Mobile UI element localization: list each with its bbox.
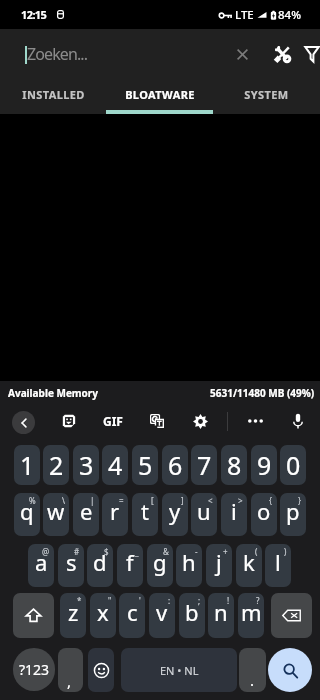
button[interactable]: % (14, 493, 40, 536)
button[interactable]: + (206, 544, 232, 587)
button[interactable]: ?123 (13, 648, 55, 691)
staticText: 12:15 (21, 7, 47, 22)
button[interactable]: ? (238, 593, 264, 638)
button[interactable]: { (251, 493, 277, 536)
staticText: " (108, 595, 112, 606)
button[interactable]: : (149, 593, 175, 638)
staticText: 5 (138, 448, 153, 482)
button[interactable]: 5 (132, 445, 158, 485)
staticText: @ (42, 546, 50, 557)
button[interactable]: ; (179, 593, 205, 638)
button[interactable]: 3 (73, 445, 99, 485)
button[interactable]: _ (117, 544, 143, 587)
button[interactable]: Emoji (88, 648, 114, 692)
button[interactable]: Stickers (56, 408, 82, 434)
button[interactable]: ' (119, 593, 145, 638)
button[interactable]: SYSTEM (213, 80, 320, 114)
staticText: 3 (79, 448, 94, 482)
button[interactable]: INSTALLED (0, 80, 106, 114)
staticText: } (298, 495, 302, 506)
staticText: > (238, 495, 243, 506)
staticText: 9 (257, 448, 272, 482)
button[interactable]: Clear search (222, 34, 262, 74)
button[interactable]: | (73, 493, 99, 536)
staticText: q (20, 496, 34, 526)
button[interactable]: 6 (162, 445, 188, 485)
staticText: # (74, 546, 80, 557)
staticText: ) (284, 546, 287, 557)
button[interactable]: BLOATWARE (106, 80, 213, 114)
staticText: { (269, 495, 273, 506)
staticText: j (216, 547, 222, 577)
staticText: x (97, 597, 109, 627)
staticText: % (29, 495, 36, 506)
button[interactable]: \ (43, 493, 69, 536)
button[interactable]: 9 (251, 445, 277, 485)
staticText: w (47, 496, 65, 526)
staticText: INSTALLED (22, 87, 85, 102)
button[interactable]: 2 (43, 445, 69, 485)
button[interactable]: ] (162, 493, 188, 536)
staticText: ? (256, 595, 260, 606)
button[interactable]: = (102, 493, 128, 536)
button[interactable]: " (90, 593, 116, 638)
button[interactable]: Search (268, 648, 312, 692)
staticText: ( (255, 546, 258, 557)
button[interactable]: 0 (280, 445, 306, 485)
staticText: _ (135, 546, 139, 557)
button[interactable]: < (191, 493, 217, 536)
button[interactable]: Translate (144, 408, 170, 434)
button[interactable]: - (176, 544, 202, 587)
button[interactable]: # (58, 544, 84, 587)
staticText: . (250, 670, 255, 690)
button[interactable]: Filter (292, 34, 320, 74)
button[interactable]: Tools (262, 34, 302, 74)
button[interactable]: [ (132, 493, 158, 536)
staticText: | (90, 495, 95, 506)
staticText: 84% (278, 7, 301, 23)
staticText: EN • NL (160, 663, 199, 678)
button[interactable]: 8 (221, 445, 247, 485)
staticText: LTE (235, 7, 254, 23)
staticText: u (197, 496, 211, 526)
staticText: 6 (168, 448, 183, 482)
staticText: + (223, 546, 228, 557)
staticText: r (110, 496, 120, 526)
button[interactable]: GIF (100, 408, 126, 434)
button[interactable]: More options (242, 408, 268, 434)
button[interactable]: $ (87, 544, 113, 587)
button[interactable]: & (147, 544, 173, 587)
button[interactable]: ! (208, 593, 234, 638)
staticText: z (68, 597, 79, 627)
button[interactable]: * (60, 593, 86, 638)
staticText: l (275, 547, 281, 577)
button[interactable]: 1 (14, 445, 40, 485)
button[interactable]: 7 (191, 445, 217, 485)
staticText: * (77, 595, 82, 606)
staticText: p (286, 496, 300, 526)
button[interactable]: Backspace (271, 593, 312, 638)
staticText: f (126, 547, 134, 577)
button[interactable]: > (221, 493, 247, 536)
staticText: \ (62, 495, 65, 506)
button[interactable]: Back (12, 411, 35, 434)
button[interactable]: 4 (102, 445, 128, 485)
staticText: i (231, 496, 237, 526)
button[interactable]: , (58, 648, 83, 692)
button[interactable]: ( (236, 544, 262, 587)
staticText: d (93, 547, 107, 577)
button[interactable]: Shift (13, 593, 54, 638)
staticText: 7 (197, 448, 212, 482)
staticText: e (80, 496, 93, 526)
button[interactable]: Settings (187, 408, 213, 434)
button[interactable]: ) (265, 544, 291, 587)
staticText: Zoeken... (27, 43, 88, 65)
staticText: ! (227, 595, 230, 606)
staticText: ' (139, 595, 141, 606)
button[interactable]: @ (28, 544, 54, 587)
button[interactable]: Voice input (285, 408, 311, 434)
staticText: ] (181, 495, 184, 506)
button[interactable]: . (239, 648, 266, 692)
button[interactable]: EN • NL (121, 648, 237, 692)
button[interactable]: } (280, 493, 306, 536)
